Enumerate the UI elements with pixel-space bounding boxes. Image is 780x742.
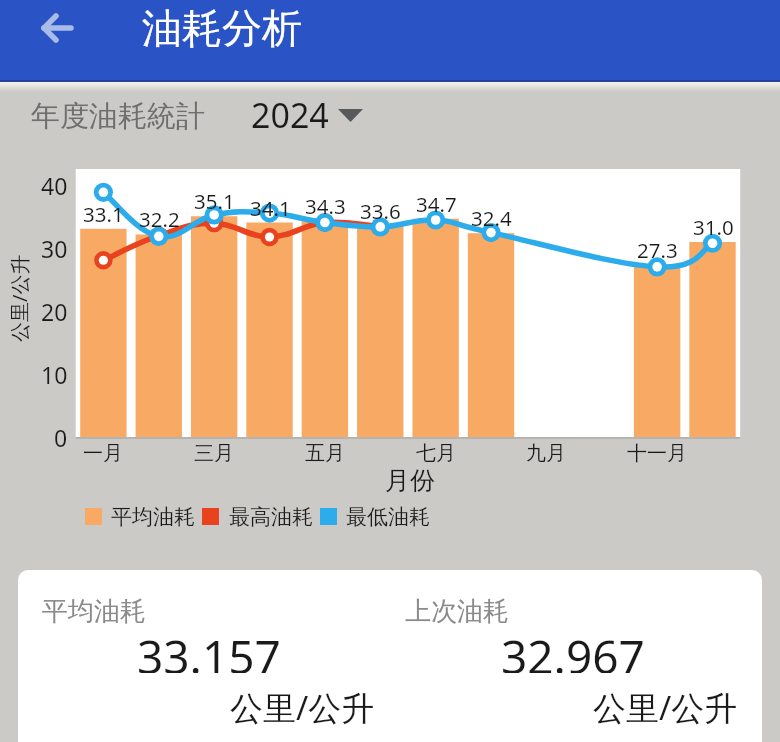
staticText: 32.4 [471, 204, 512, 232]
staticText: 32.2 [139, 205, 180, 233]
staticText: 32.967 [501, 625, 645, 673]
staticText: 2024 [251, 92, 329, 138]
staticText: 40 [41, 170, 68, 200]
staticText: 平均油耗 [111, 504, 195, 530]
staticText: 27.3 [637, 236, 678, 264]
staticText: 月份 [385, 465, 435, 496]
staticText: 33.157 [137, 625, 281, 673]
staticText: 20 [41, 296, 68, 326]
staticText: 一月 [83, 441, 123, 466]
button[interactable]: 2024 [245, 90, 370, 136]
staticText: 三月 [194, 441, 234, 466]
staticText: 七月 [416, 441, 456, 466]
staticText: 十一月 [627, 441, 687, 466]
staticText: 34.3 [305, 192, 346, 220]
staticText: 30 [41, 233, 68, 263]
staticText: 公里/公升 [593, 685, 738, 725]
staticText: 最高油耗 [229, 504, 313, 530]
button[interactable] [28, 0, 86, 56]
staticText: 0 [54, 422, 68, 452]
staticText: 10 [41, 359, 68, 389]
staticText: 平均油耗 [42, 595, 146, 628]
staticText: 年度油耗統計 [31, 98, 205, 135]
staticText: 33.1 [83, 200, 124, 228]
staticText: 35.1 [194, 187, 235, 215]
staticText: 油耗分析 [142, 3, 302, 49]
staticText: 最低油耗 [346, 504, 430, 530]
staticText: 31.0 [693, 213, 734, 241]
staticText: 公里/公升 [230, 685, 375, 725]
staticText: 五月 [305, 441, 345, 466]
staticText: 34.1 [250, 194, 291, 222]
staticText: 上次油耗 [405, 595, 509, 628]
staticText: 34.7 [416, 190, 457, 218]
staticText: 九月 [526, 441, 566, 466]
staticText: 33.6 [360, 197, 401, 225]
staticText: 公里/公升 [6, 254, 33, 342]
